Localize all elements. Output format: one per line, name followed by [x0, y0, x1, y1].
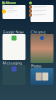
staticText: Messaging	[2, 60, 21, 66]
staticText: 9:41	[2, 0, 9, 5]
staticText: Chrome	[30, 29, 45, 35]
staticText: Photos	[30, 63, 41, 69]
staticText: Google Now	[2, 29, 23, 35]
